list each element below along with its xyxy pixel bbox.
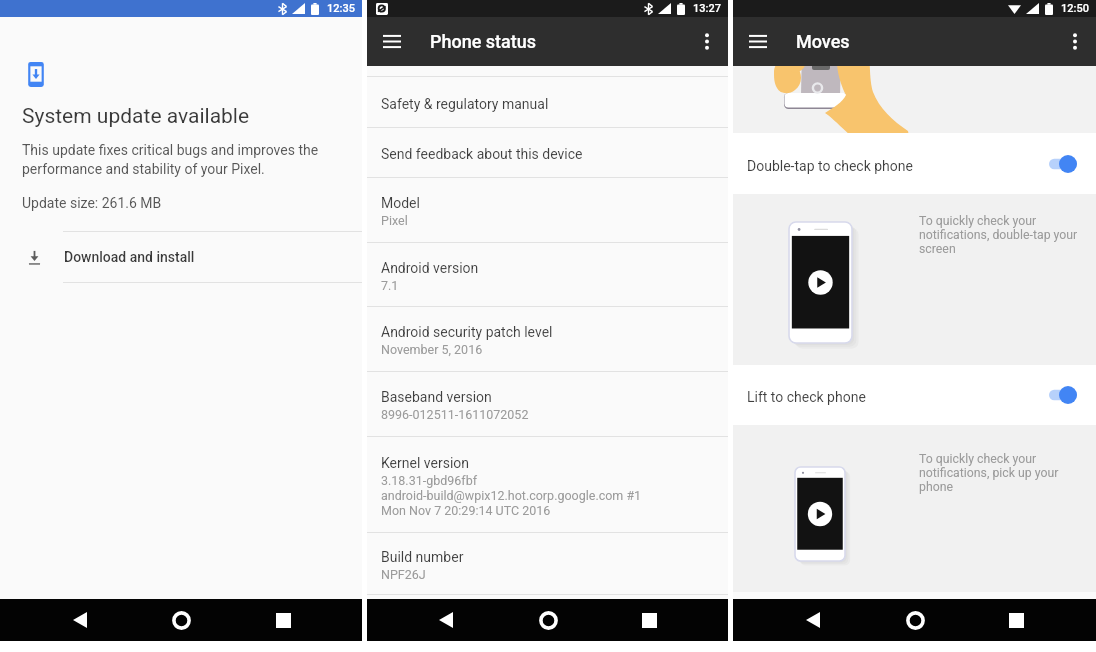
button[interactable]: Home <box>893 599 937 641</box>
button[interactable]: Model <box>367 178 728 242</box>
staticText: Build number <box>381 549 464 565</box>
staticText: 3.18.31-gbd96fbf android-build@wpix12.ho… <box>381 473 642 518</box>
button[interactable]: Recent apps <box>994 599 1038 641</box>
staticText: Moves <box>796 31 850 52</box>
button[interactable]: Kernel version <box>367 437 728 532</box>
staticText: Pixel <box>381 213 408 228</box>
button[interactable]: Android version <box>367 243 728 306</box>
staticText: 8996-012511-1611072052 <box>381 407 529 422</box>
staticText: 12:50 <box>1061 2 1089 15</box>
staticText: System update available <box>22 104 250 129</box>
staticText: Lift to check phone <box>747 389 866 405</box>
button[interactable]: Back <box>58 599 102 641</box>
staticText: Model <box>381 195 420 211</box>
button[interactable]: Play demo video <box>789 222 852 343</box>
staticText: 12:35 <box>327 2 355 15</box>
button[interactable]: Home <box>526 599 570 641</box>
button[interactable]: Back <box>791 599 835 641</box>
staticText: Kernel version <box>381 455 470 471</box>
staticText: Baseband version <box>381 389 492 405</box>
staticText: Phone status <box>430 31 537 52</box>
button[interactable]: Baseband version <box>367 372 728 436</box>
staticText: To quickly check your notifications, dou… <box>919 214 1078 256</box>
button[interactable]: Recent apps <box>261 599 305 641</box>
staticText: This update fixes critical bugs and impr… <box>22 142 319 178</box>
button[interactable]: Safety & regulatory manual <box>367 77 728 127</box>
staticText: Update size: 261.6 MB <box>22 195 162 211</box>
staticText: To quickly check your notifications, pic… <box>919 452 1059 494</box>
button[interactable]: Lift to check phone <box>733 365 1096 425</box>
staticText: Android security patch level <box>381 324 553 340</box>
staticText: NPF26J <box>381 567 426 582</box>
button[interactable]: More options <box>1054 17 1096 66</box>
button[interactable]: Open navigation drawer <box>733 17 782 66</box>
button[interactable]: Open navigation drawer <box>367 17 416 66</box>
button[interactable]: Build number <box>367 533 728 594</box>
button[interactable]: Home <box>159 599 203 641</box>
staticText: Download and install <box>64 249 195 265</box>
button[interactable]: Back <box>424 599 468 641</box>
button[interactable]: More options <box>686 17 728 66</box>
button[interactable]: Recent apps <box>627 599 671 641</box>
staticText: 13:27 <box>693 2 721 15</box>
staticText: Android version <box>381 260 479 276</box>
staticText: Safety & regulatory manual <box>381 96 549 112</box>
button[interactable]: Send feedback about this device <box>367 128 728 177</box>
button[interactable]: Play demo video <box>795 467 845 561</box>
staticText: Send feedback about this device <box>381 146 583 162</box>
staticText: 7.1 <box>381 278 399 293</box>
button[interactable]: Double-tap to check phone <box>733 133 1096 194</box>
staticText: November 5, 2016 <box>381 342 483 357</box>
button[interactable]: Download and install <box>0 231 362 283</box>
staticText: Double-tap to check phone <box>747 158 913 174</box>
button[interactable]: Android security patch level <box>367 307 728 371</box>
